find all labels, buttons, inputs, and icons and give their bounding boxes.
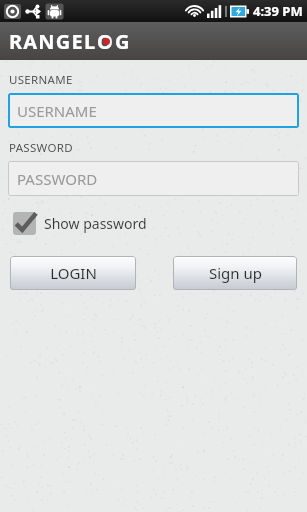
staticText: O <box>97 28 115 55</box>
button[interactable]: Sign up <box>173 256 297 290</box>
button[interactable]: Show password <box>13 210 155 237</box>
staticText: 4:39 PM <box>253 2 303 20</box>
staticText: PASSWORD <box>17 169 98 189</box>
staticText: G <box>115 28 131 55</box>
staticText: USERNAME <box>17 101 97 121</box>
button[interactable]: LOGIN <box>10 256 136 290</box>
staticText: LOGIN <box>50 263 97 283</box>
button[interactable]: USERNAME <box>8 93 299 128</box>
staticText: USERNAME <box>9 72 73 88</box>
staticText: PASSWORD <box>9 140 73 156</box>
staticText: RANGEL <box>9 28 97 55</box>
button[interactable]: PASSWORD <box>8 161 299 196</box>
staticText: Sign up <box>209 263 262 283</box>
staticText: Show password <box>44 214 147 233</box>
